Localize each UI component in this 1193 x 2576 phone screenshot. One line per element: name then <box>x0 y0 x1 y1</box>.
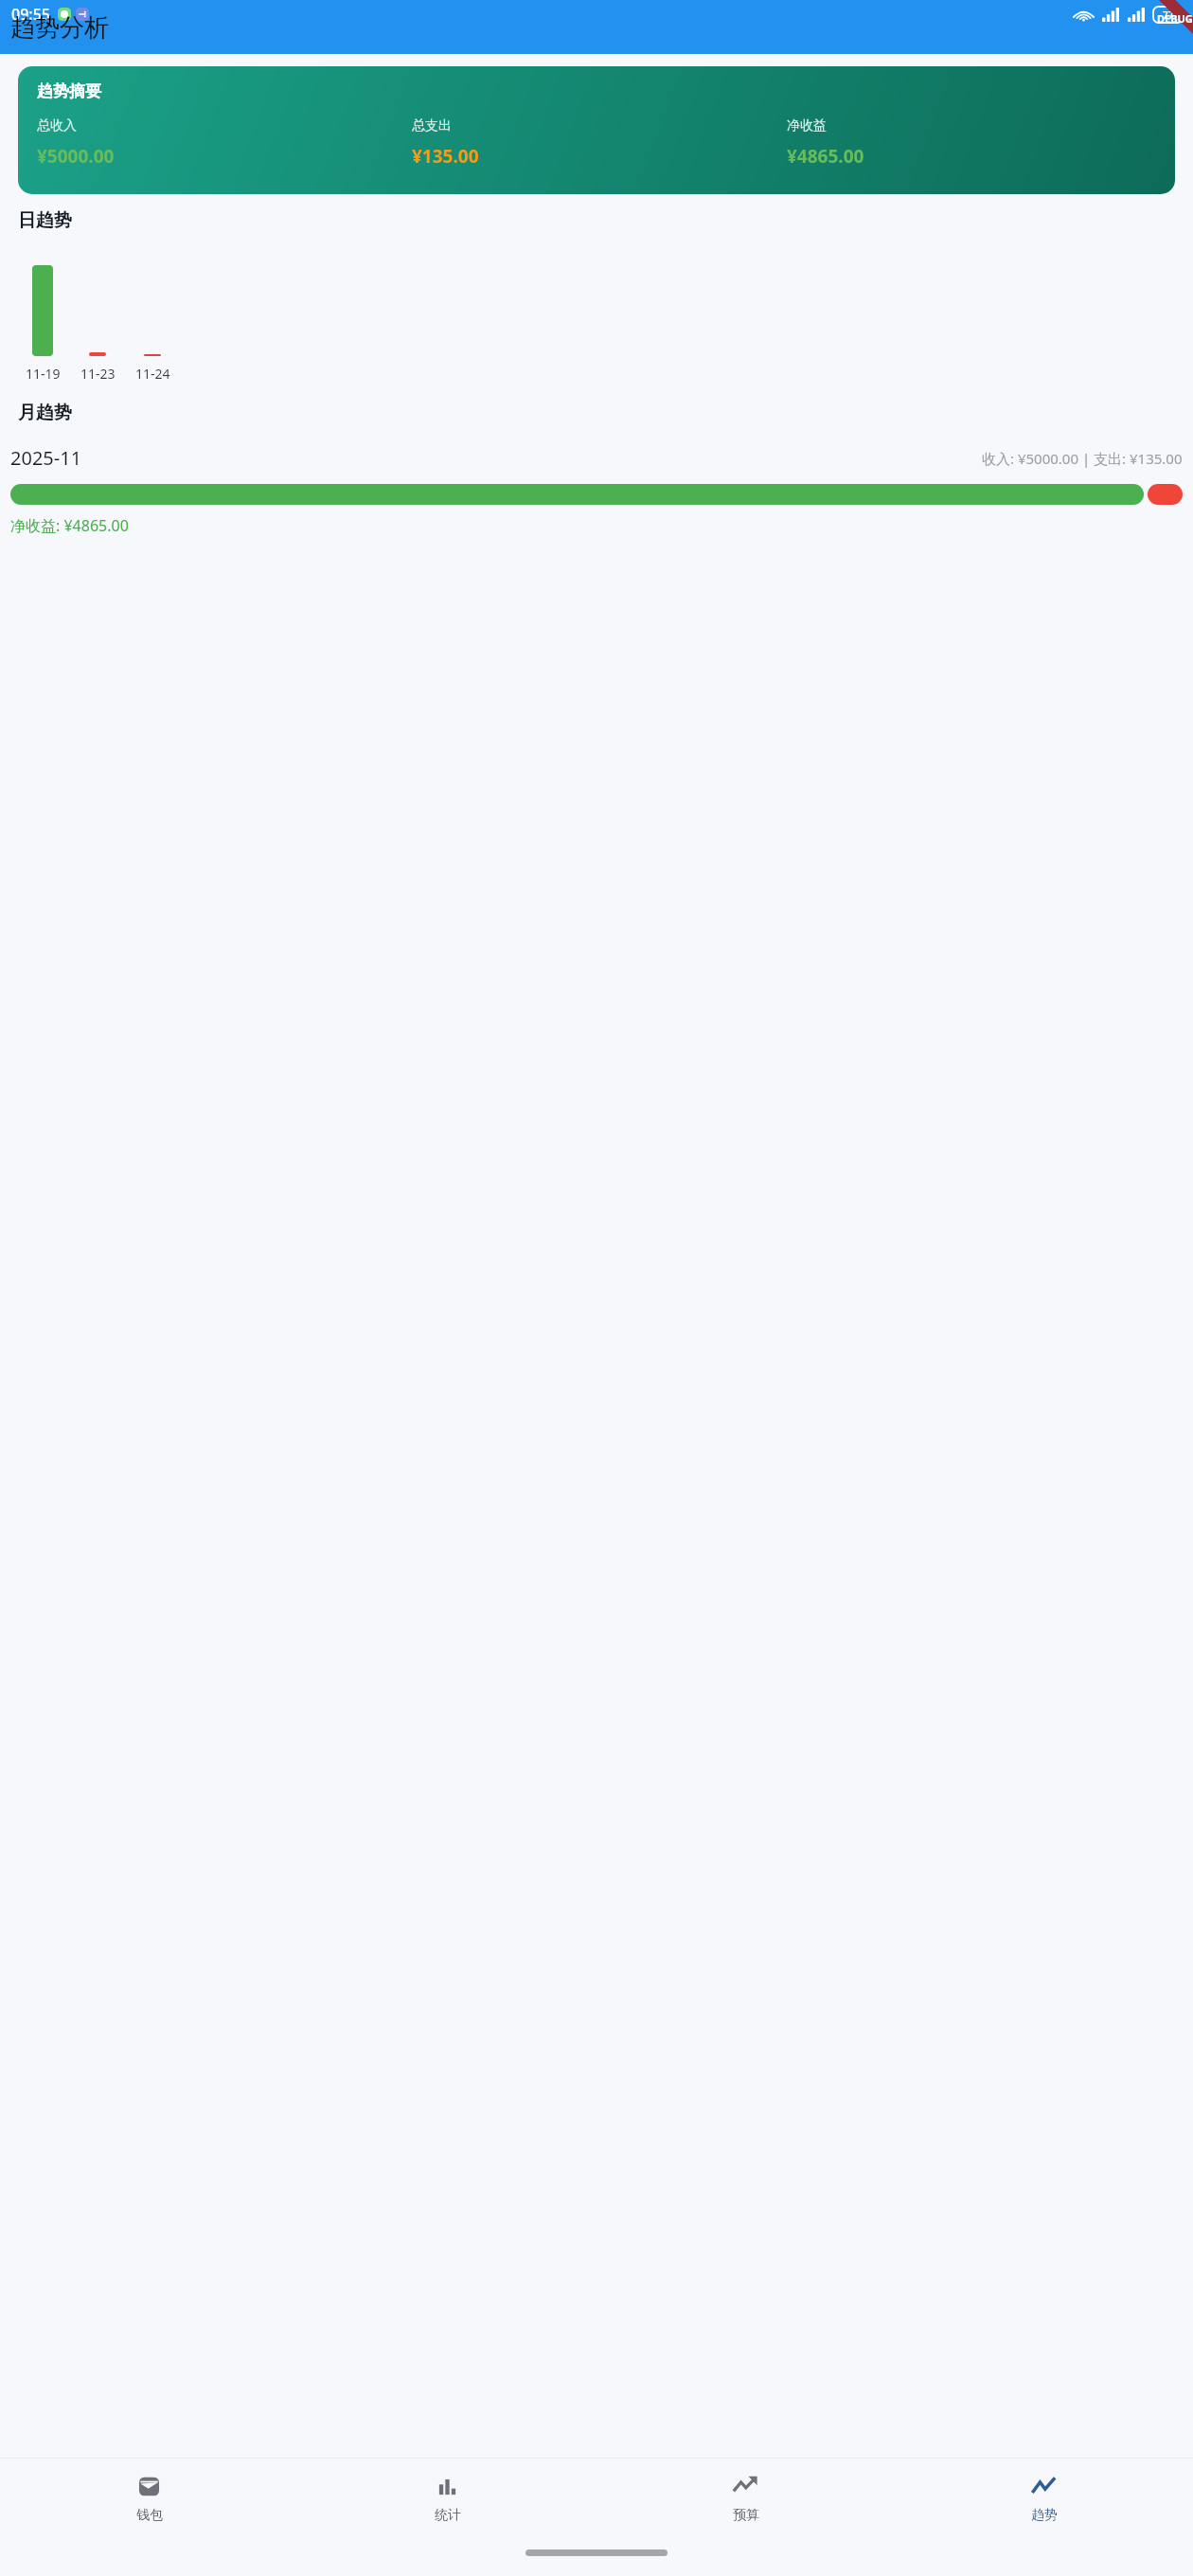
staticText: 总支出 <box>412 117 452 134</box>
staticText: 2025-11 <box>10 445 82 471</box>
staticText: 09:55 <box>11 4 50 25</box>
staticText: 预算 <box>733 2507 759 2524</box>
staticText: 总收入 <box>37 117 77 134</box>
staticText: 11-23 <box>80 365 116 383</box>
staticText: 净收益 <box>787 117 827 134</box>
staticText: ¥5000.00 <box>37 144 115 169</box>
button[interactable]: 2025-11 <box>0 445 1193 536</box>
staticText: 统计 <box>435 2507 461 2524</box>
staticText: 趋势 <box>1031 2507 1058 2524</box>
button[interactable]: 钱包 <box>0 2459 298 2538</box>
staticText: 趋势分析 <box>10 12 109 44</box>
staticText: DEBUG <box>1157 11 1193 26</box>
button[interactable]: 趋势 <box>895 2459 1193 2538</box>
staticText: ¥135.00 <box>412 144 479 169</box>
staticText: 月趋势 <box>18 402 72 424</box>
button[interactable]: 趋势摘要 <box>18 66 1175 194</box>
staticText: 收入: ¥5000.00 | 支出: ¥135.00 <box>982 449 1183 468</box>
staticText: 日趋势 <box>18 209 72 232</box>
button[interactable]: 统计 <box>298 2459 596 2538</box>
staticText: 11-19 <box>26 365 61 383</box>
staticText: 77 <box>1163 9 1174 22</box>
staticText: 净收益: ¥4865.00 <box>10 515 129 536</box>
staticText: ¥4865.00 <box>787 144 864 169</box>
staticText: 趋势摘要 <box>37 81 101 101</box>
staticText: 11-24 <box>135 365 170 383</box>
button[interactable]: 预算 <box>596 2459 895 2538</box>
staticText: 钱包 <box>136 2507 163 2524</box>
